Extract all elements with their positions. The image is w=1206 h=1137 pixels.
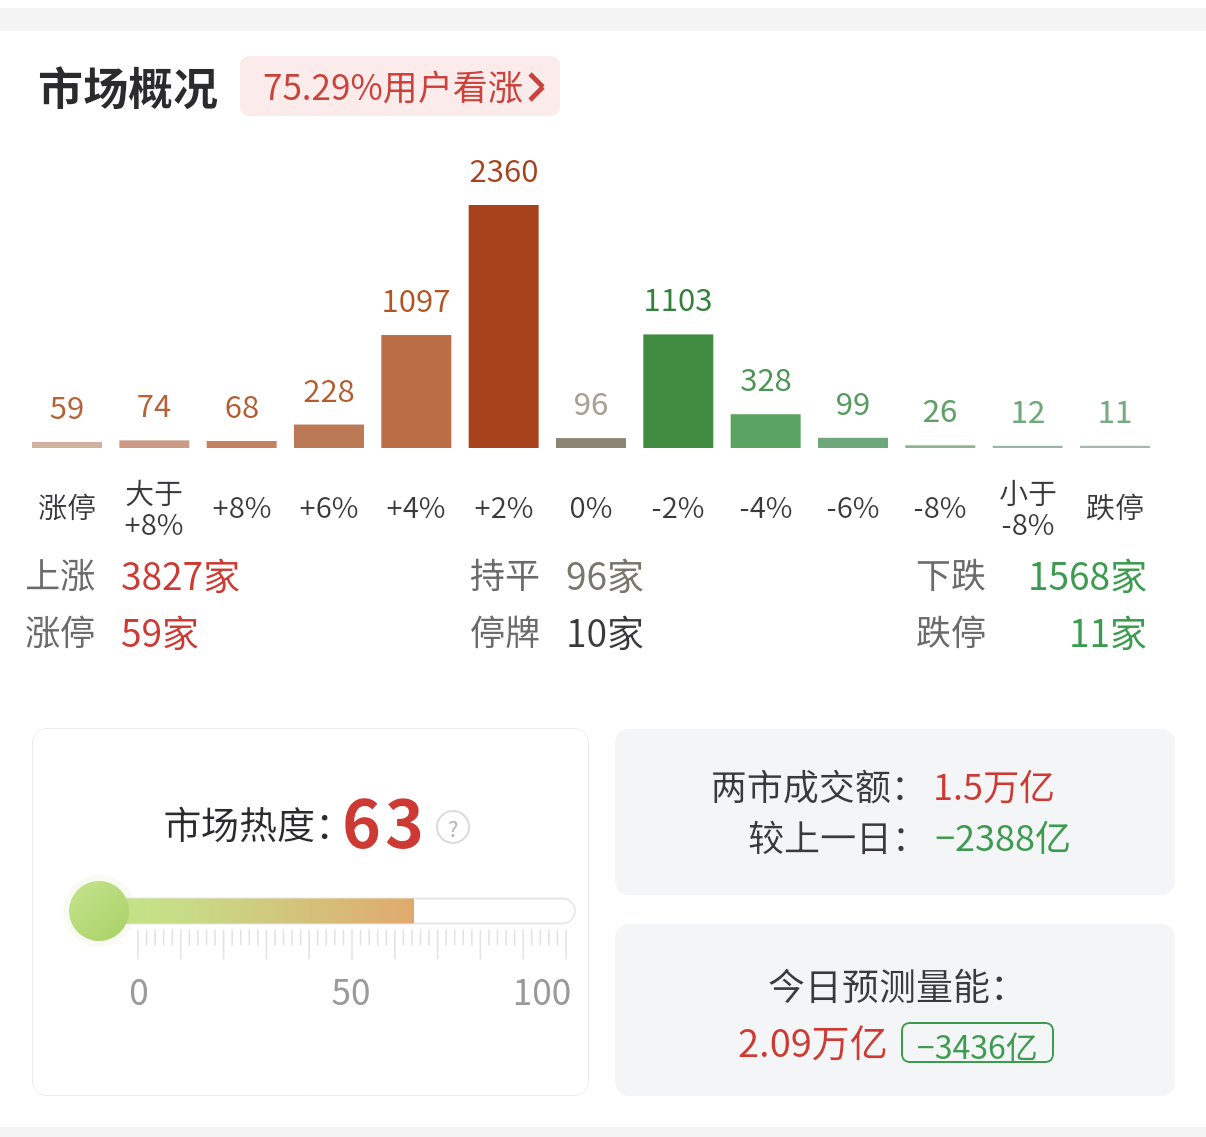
staticText: 涨停: [17, 484, 117, 526]
staticText: 96: [541, 379, 641, 424]
staticText: 2.09万亿: [738, 1013, 888, 1068]
staticText: 1097: [366, 276, 466, 321]
staticText: 大于: [104, 470, 204, 512]
staticText: 涨停: [25, 604, 96, 655]
staticText: -4%: [716, 484, 816, 526]
staticText: 0: [99, 964, 179, 1015]
staticText: +8%: [104, 501, 204, 543]
staticText: −3436亿: [917, 1022, 1038, 1063]
staticText: 10家: [566, 604, 645, 658]
staticText: 跌停: [916, 604, 987, 655]
button[interactable]: 市场热度：: [32, 728, 589, 1096]
staticText: 12: [978, 387, 1078, 432]
staticText: 68: [192, 382, 292, 427]
button[interactable]: 两市成交额：: [615, 729, 1175, 895]
staticText: 1103: [628, 275, 728, 320]
staticText: +2%: [454, 484, 554, 526]
staticText: 96家: [566, 547, 645, 601]
staticText: 市场概况: [38, 53, 219, 118]
staticText: 两市成交额：: [711, 758, 928, 810]
staticText: 63: [342, 771, 428, 867]
staticText: 11家: [1069, 604, 1148, 658]
staticText: 市场热度：: [163, 795, 354, 850]
button[interactable]: 今日预测量能：: [615, 924, 1175, 1096]
button[interactable]: 75.29%用户看涨: [240, 56, 560, 116]
staticText: 75.29%用户看涨: [263, 59, 523, 110]
staticText: 228: [279, 366, 379, 411]
staticText: -8%: [890, 484, 990, 526]
staticText: 59家: [121, 604, 200, 658]
staticText: -8%: [978, 501, 1078, 543]
staticText: 小于: [978, 470, 1078, 512]
staticText: +4%: [366, 484, 466, 526]
staticText: 99: [803, 379, 903, 424]
staticText: -2%: [628, 484, 728, 526]
staticText: +6%: [279, 484, 379, 526]
staticText: 59: [17, 383, 117, 428]
staticText: 26: [890, 386, 990, 431]
staticText: 1568家: [1028, 547, 1148, 601]
staticText: 100: [502, 964, 582, 1015]
staticText: 停牌: [470, 604, 541, 655]
staticText: 跌停: [1065, 484, 1165, 526]
staticText: 3827家: [121, 547, 241, 601]
staticText: 1.5万亿: [933, 758, 1055, 810]
staticText: 较上一日：: [748, 809, 929, 861]
button[interactable]: 热度说明: [436, 810, 470, 844]
staticText: −2388亿: [935, 809, 1071, 861]
staticText: 0%: [541, 484, 641, 526]
staticText: -6%: [803, 484, 903, 526]
staticText: 下跌: [916, 547, 987, 598]
staticText: 11: [1065, 387, 1165, 432]
staticText: 74: [104, 381, 204, 426]
staticText: 持平: [470, 547, 541, 598]
staticText: 上涨: [25, 547, 96, 598]
staticText: 50: [311, 964, 391, 1015]
staticText: +8%: [192, 484, 292, 526]
staticText: 今日预测量能：: [768, 957, 1027, 1011]
staticText: ?: [448, 811, 459, 843]
staticText: 328: [716, 355, 816, 400]
staticText: 2360: [454, 146, 554, 191]
